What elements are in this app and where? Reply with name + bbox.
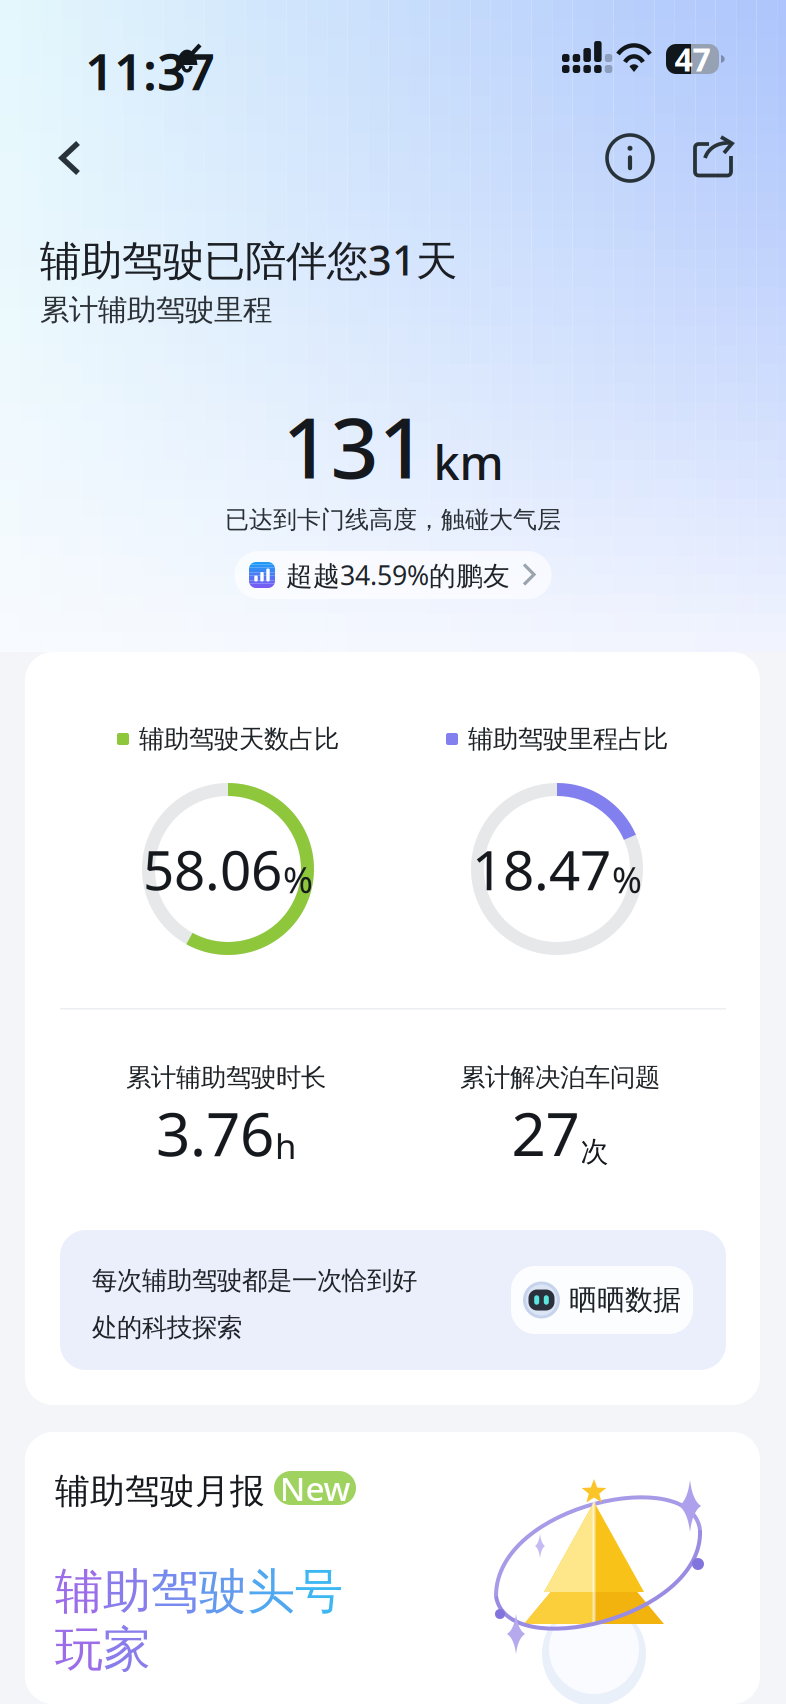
staticText: 号	[295, 1562, 343, 1621]
staticText: 驶	[199, 1562, 247, 1621]
button[interactable]: 超越34.59%的鹏友	[234, 551, 551, 599]
staticText: h	[275, 1123, 296, 1169]
staticText: 辅	[55, 1562, 103, 1621]
button[interactable]: 晒晒数据	[511, 1266, 693, 1334]
staticText: 18.47	[472, 833, 611, 905]
button[interactable]: Information	[595, 123, 665, 193]
staticText: 辅助驾驶已陪伴您31天	[40, 232, 457, 287]
staticText: 玩	[55, 1620, 103, 1679]
staticText: 家	[103, 1620, 151, 1679]
staticText: 晒晒数据	[569, 1283, 681, 1317]
staticText: New	[279, 1466, 350, 1510]
staticText: 超越34.59%的鹏友	[286, 557, 510, 593]
staticText: 头	[247, 1562, 295, 1621]
staticText: 累计辅助驾驶里程	[40, 292, 272, 328]
staticText: 辅助驾驶里程占比	[468, 723, 668, 754]
staticText: 58.06	[143, 833, 282, 905]
staticText: 累计辅助驾驶时长	[126, 1062, 326, 1093]
staticText: km	[433, 431, 503, 493]
staticText: 助	[103, 1562, 151, 1621]
staticText: 131	[282, 390, 426, 502]
button[interactable]: Share	[678, 123, 748, 193]
button[interactable]: Back	[35, 123, 105, 193]
staticText: %	[283, 855, 313, 903]
staticText: 处的科技探索	[92, 1312, 242, 1343]
staticText: 辅助驾驶月报	[55, 1470, 265, 1513]
staticText: 11:37	[85, 37, 215, 104]
staticText: 47	[674, 38, 710, 80]
staticText: 已达到卡门线高度，触碰大气层	[225, 505, 561, 534]
staticText: 次	[580, 1134, 608, 1169]
staticText: 驾	[151, 1562, 199, 1621]
staticText: 3.76	[156, 1093, 274, 1173]
staticText: 累计解决泊车问题	[460, 1062, 660, 1093]
staticText: 辅助驾驶天数占比	[139, 723, 339, 754]
staticText: 27	[511, 1093, 579, 1173]
staticText: %	[612, 855, 642, 903]
staticText: 每次辅助驾驶都是一次恰到好	[92, 1265, 417, 1296]
